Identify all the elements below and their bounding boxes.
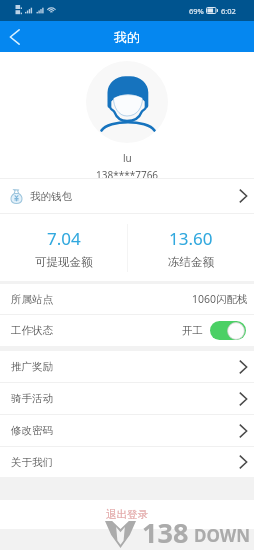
staticText: 推广奖励 bbox=[11, 360, 53, 373]
staticText: 138 bbox=[142, 514, 189, 550]
staticText: 138****7766 bbox=[96, 168, 159, 178]
staticText: lu bbox=[123, 151, 132, 165]
button[interactable]: Work status toggle bbox=[210, 321, 246, 340]
staticText: 退出登录 bbox=[106, 508, 148, 521]
staticText: 开工 bbox=[182, 324, 203, 337]
button[interactable]: 关于我们 bbox=[0, 447, 254, 477]
button[interactable]: 工作状态 bbox=[0, 315, 254, 346]
button[interactable]: 骑手活动 bbox=[0, 383, 254, 414]
button[interactable]: 我的钱包 bbox=[0, 179, 254, 213]
staticText: 工作状态 bbox=[11, 324, 53, 337]
staticText: DOWN bbox=[194, 524, 250, 547]
staticText: 冻结金额 bbox=[168, 255, 214, 269]
staticText: 13.60 bbox=[169, 227, 213, 250]
staticText: 所属站点 bbox=[11, 293, 53, 306]
staticText: 我的 bbox=[114, 29, 140, 45]
staticText: 关于我们 bbox=[11, 456, 53, 469]
staticText: 修改密码 bbox=[11, 424, 53, 437]
staticText: 6:02 bbox=[221, 6, 236, 16]
staticText: 1060闪配栈 bbox=[192, 292, 248, 306]
button[interactable]: 修改密码 bbox=[0, 415, 254, 446]
button[interactable]: 所属站点 bbox=[0, 284, 254, 314]
button[interactable]: 推广奖励 bbox=[0, 351, 254, 382]
staticText: 69% bbox=[189, 6, 204, 16]
staticText: 我的钱包 bbox=[30, 190, 72, 203]
button[interactable]: 退出登录 bbox=[96, 502, 158, 527]
staticText: 7.04 bbox=[47, 227, 81, 250]
staticText: 可提现金额 bbox=[35, 255, 93, 269]
button[interactable]: Back bbox=[0, 22, 29, 51]
staticText: 骑手活动 bbox=[11, 392, 53, 405]
